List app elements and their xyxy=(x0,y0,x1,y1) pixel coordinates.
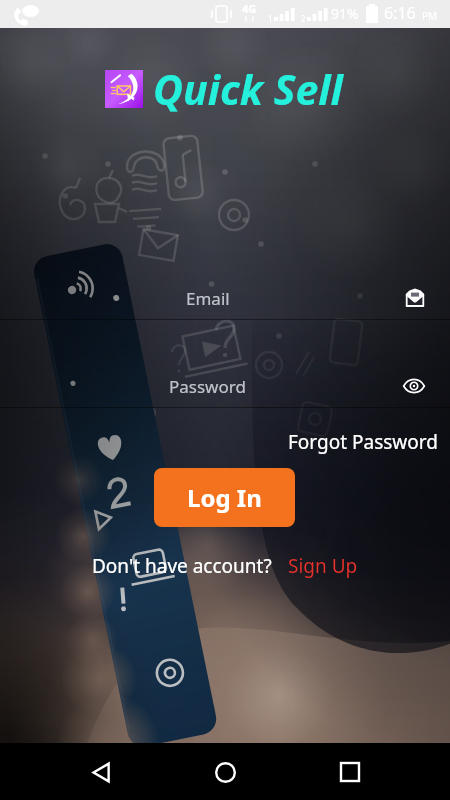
staticText: Sign Up xyxy=(288,553,358,579)
staticText: Don't have account? xyxy=(92,553,272,579)
button[interactable]: Back xyxy=(77,748,125,796)
staticText: 91% xyxy=(331,4,359,23)
button[interactable]: Home xyxy=(201,748,249,796)
staticText: 6:16 xyxy=(384,2,416,24)
button[interactable]: Log In xyxy=(154,468,295,527)
button[interactable]: Password xyxy=(0,365,450,407)
other: Show password xyxy=(403,375,425,397)
staticText: 4G xyxy=(242,1,257,16)
button[interactable]: Email xyxy=(0,277,450,319)
button[interactable]: Recent apps xyxy=(326,748,374,796)
staticText: Email xyxy=(186,287,230,310)
button[interactable]: Forgot Password xyxy=(288,425,450,459)
staticText: Password xyxy=(169,375,246,398)
staticText: Forgot Password xyxy=(288,429,438,455)
staticText: 2 xyxy=(301,13,306,24)
staticText: Quick Sell xyxy=(153,61,343,117)
staticText: 1 xyxy=(268,13,273,24)
other: Email xyxy=(405,288,425,308)
staticText: PM xyxy=(422,9,438,23)
staticText: Log In xyxy=(187,481,262,514)
button[interactable]: Sign Up xyxy=(288,553,358,579)
